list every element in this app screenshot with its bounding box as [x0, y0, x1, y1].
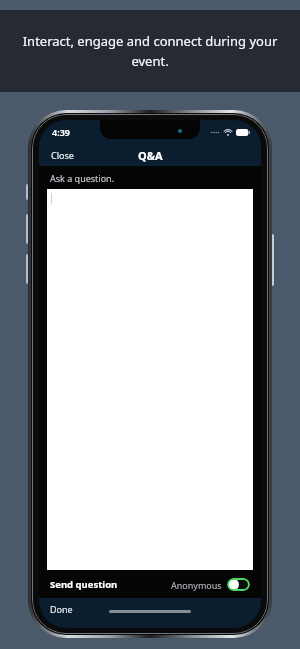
button[interactable]: Send question: [39, 573, 129, 596]
button[interactable]: Anonymous: [169, 575, 252, 594]
staticText: Interact, engage and connect during your…: [14, 32, 286, 70]
button[interactable]: Close: [39, 145, 86, 165]
staticText: Q&A: [138, 148, 163, 163]
staticText: Done: [50, 603, 73, 615]
button[interactable]: Done: [39, 600, 84, 618]
staticText: Ask a question.: [50, 172, 115, 184]
staticText: Anonymous: [171, 579, 222, 591]
staticText: Send question: [50, 578, 118, 591]
staticText: Close: [51, 149, 74, 161]
staticText: 4:39: [52, 126, 70, 138]
